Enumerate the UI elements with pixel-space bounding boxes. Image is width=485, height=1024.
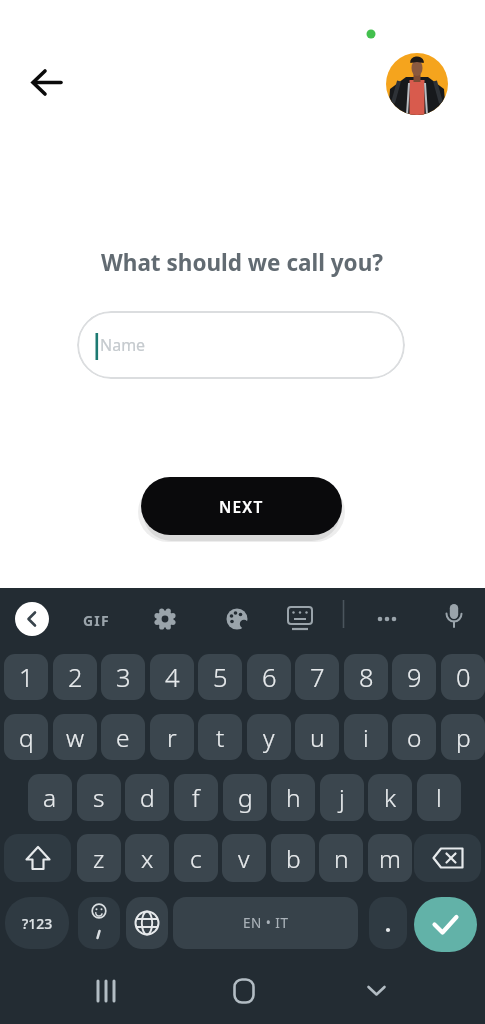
staticText: 1 — [19, 660, 34, 695]
staticText: 8 — [359, 660, 374, 695]
staticText: 9 — [407, 660, 422, 695]
staticText: n — [334, 842, 349, 875]
staticText: j — [339, 781, 345, 814]
button[interactable]: q — [4, 714, 48, 760]
staticText: NEXT — [219, 496, 264, 517]
button[interactable]: 4 — [150, 654, 194, 700]
button[interactable]: s — [77, 774, 121, 821]
staticText: Name — [100, 334, 146, 356]
staticText: GIF — [83, 611, 110, 630]
button[interactable]: 8 — [344, 654, 388, 700]
button[interactable]: Name — [77, 311, 405, 379]
staticText: 3 — [116, 660, 131, 695]
staticText: 7 — [310, 660, 325, 695]
button[interactable]: b — [271, 834, 315, 882]
staticText: p — [456, 721, 471, 754]
button[interactable] — [77, 974, 137, 1014]
button[interactable] — [148, 602, 182, 636]
button[interactable]: g — [223, 774, 267, 821]
button[interactable]: j — [320, 774, 364, 821]
staticText: o — [407, 721, 422, 754]
button[interactable]: l — [417, 774, 461, 821]
button[interactable]: o — [392, 714, 436, 760]
staticText: t — [216, 721, 225, 754]
button[interactable] — [214, 974, 274, 1014]
button[interactable]: 7 — [295, 654, 339, 700]
button[interactable]: EN • IT — [173, 897, 358, 949]
button[interactable]: m — [368, 834, 412, 882]
staticText: i — [363, 721, 369, 754]
staticText: x — [141, 842, 154, 875]
button[interactable] — [4, 834, 71, 882]
staticText: q — [19, 721, 34, 754]
button[interactable] — [369, 897, 407, 949]
staticText: m — [379, 842, 401, 875]
button[interactable] — [370, 602, 404, 636]
button[interactable]: w — [53, 714, 97, 760]
staticText: e — [116, 721, 130, 754]
button[interactable]: p — [441, 714, 485, 760]
button[interactable]: GIF — [76, 606, 116, 634]
button[interactable] — [15, 602, 49, 636]
button[interactable]: 6 — [247, 654, 291, 700]
button[interactable]: v — [222, 834, 266, 882]
button[interactable]: z — [77, 834, 121, 882]
staticText: 2 — [68, 660, 83, 695]
staticText: s — [93, 781, 105, 814]
button[interactable]: k — [368, 774, 412, 821]
staticText: w — [66, 721, 85, 754]
staticText: l — [436, 781, 442, 814]
staticText: z — [93, 842, 105, 875]
button[interactable]: h — [271, 774, 315, 821]
staticText: 6 — [262, 660, 277, 695]
staticText: 4 — [165, 660, 180, 695]
staticText: u — [310, 721, 325, 754]
button[interactable]: c — [174, 834, 218, 882]
button[interactable] — [386, 53, 448, 115]
staticText: c — [190, 842, 202, 875]
button[interactable]: n — [319, 834, 363, 882]
button[interactable]: f — [174, 774, 218, 821]
button[interactable]: t — [198, 714, 242, 760]
button[interactable] — [437, 600, 471, 634]
button[interactable]: r — [150, 714, 194, 760]
staticText: EN • IT — [243, 914, 289, 932]
button[interactable]: 0 — [441, 654, 485, 700]
staticText: r — [167, 721, 177, 754]
staticText: y — [263, 721, 275, 754]
button[interactable]: x — [125, 834, 169, 882]
button[interactable]: 5 — [198, 654, 242, 700]
button[interactable] — [283, 602, 317, 636]
button[interactable]: i — [344, 714, 388, 760]
button[interactable]: 9 — [392, 654, 436, 700]
button[interactable]: u — [295, 714, 339, 760]
button[interactable] — [78, 897, 120, 949]
button[interactable] — [220, 602, 254, 636]
staticText: v — [238, 842, 250, 875]
button[interactable]: a — [28, 774, 72, 821]
button[interactable]: NEXT — [141, 477, 342, 535]
staticText: g — [238, 781, 253, 814]
staticText: d — [140, 781, 155, 814]
staticText: 0 — [456, 660, 471, 695]
button[interactable] — [126, 897, 168, 949]
staticText: 5 — [213, 660, 228, 695]
staticText: k — [384, 781, 397, 814]
button[interactable]: d — [125, 774, 169, 821]
button[interactable] — [22, 62, 72, 102]
button[interactable] — [414, 897, 477, 952]
staticText: ?123 — [22, 914, 53, 933]
staticText: What should we call you? — [101, 247, 384, 277]
button[interactable]: 3 — [101, 654, 145, 700]
button[interactable]: 1 — [4, 654, 48, 700]
button[interactable]: 2 — [53, 654, 97, 700]
button[interactable]: e — [101, 714, 145, 760]
button[interactable] — [414, 834, 481, 882]
staticText: a — [43, 781, 57, 814]
button[interactable]: y — [247, 714, 291, 760]
staticText: h — [286, 781, 301, 814]
button[interactable] — [346, 974, 406, 1014]
staticText: b — [286, 842, 301, 875]
button[interactable]: ?123 — [5, 897, 69, 949]
staticText: f — [192, 781, 200, 814]
